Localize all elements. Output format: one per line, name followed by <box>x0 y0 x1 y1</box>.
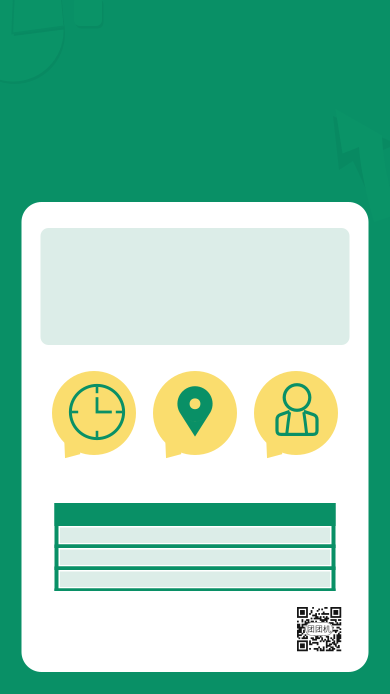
button[interactable]: Opening hours <box>52 371 136 461</box>
button[interactable]: Contact <box>254 371 338 461</box>
staticText: 团团机 <box>307 624 331 634</box>
button[interactable]: Location <box>153 371 237 461</box>
button[interactable]: Scan QR code <box>297 607 341 651</box>
